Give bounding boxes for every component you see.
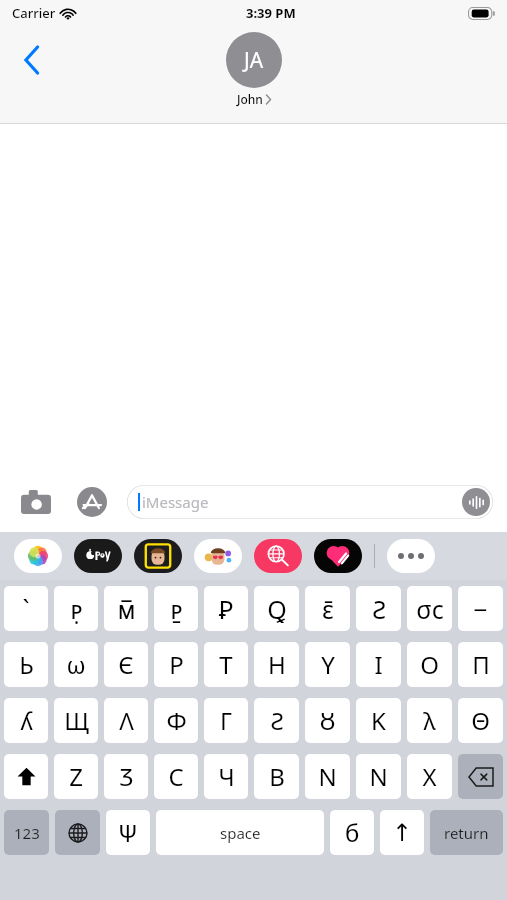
staticText: Θ xyxy=(471,704,490,737)
staticText: Ȣ xyxy=(319,704,336,737)
button[interactable]: б xyxy=(330,810,374,855)
button[interactable]: Щ xyxy=(54,698,98,743)
staticText: Ψ xyxy=(118,816,138,849)
staticText: Ι xyxy=(374,648,383,681)
button[interactable]: Φ xyxy=(154,698,198,743)
staticText: − xyxy=(473,592,488,626)
button[interactable]: Ν xyxy=(305,754,350,799)
button[interactable]: Z xyxy=(54,754,98,799)
button[interactable]: Switch keyboard xyxy=(55,810,100,855)
staticText: ↑ xyxy=(392,819,413,847)
button[interactable]: Κ xyxy=(356,698,401,743)
button[interactable]: Fitness xyxy=(314,539,362,573)
button[interactable]: Ꝑ xyxy=(204,586,248,631)
staticText: return xyxy=(444,823,489,843)
staticText: 3:39 PM xyxy=(246,4,296,22)
staticText: Β xyxy=(269,760,285,793)
staticText: ω xyxy=(66,648,86,681)
button[interactable]: Ꝗ xyxy=(254,586,299,631)
staticText: Ο xyxy=(420,648,439,681)
button[interactable]: Back xyxy=(10,38,54,82)
staticText: ᴘ̱ xyxy=(170,592,183,626)
staticText: Γ xyxy=(220,704,232,737)
staticText: Η xyxy=(268,648,286,681)
button[interactable]: iMessage xyxy=(127,485,493,519)
button[interactable]: Χ xyxy=(407,754,452,799)
button[interactable]: App Store xyxy=(74,484,110,520)
button[interactable]: Ƨ xyxy=(356,586,401,631)
staticText: C xyxy=(168,760,184,793)
button[interactable]: Υ xyxy=(305,642,350,687)
button[interactable]: Η xyxy=(254,642,299,687)
staticText: Ч xyxy=(218,760,235,793)
staticText: ` xyxy=(22,592,30,626)
staticText: Carrier xyxy=(12,4,56,22)
button[interactable]: Ȣ xyxy=(305,698,350,743)
button[interactable]: return xyxy=(430,810,503,855)
button[interactable]: ᴘ̣ xyxy=(54,586,98,631)
staticText: Ν xyxy=(318,760,337,793)
button[interactable]: ε̄ xyxy=(305,586,350,631)
staticText: Щ xyxy=(64,704,89,737)
button[interactable]: Ψ xyxy=(106,810,150,855)
button[interactable]: Λ xyxy=(104,698,148,743)
staticText: JA xyxy=(244,46,264,75)
staticText: space xyxy=(220,823,261,843)
button[interactable]: Ι xyxy=(356,642,401,687)
button[interactable]: JA xyxy=(226,32,282,107)
button[interactable]: ω xyxy=(54,642,98,687)
button[interactable]: Ч xyxy=(204,754,248,799)
button[interactable]: σc xyxy=(407,586,452,631)
staticText: Φ xyxy=(166,704,187,737)
button[interactable]: Photos xyxy=(14,539,62,573)
button[interactable]: Β xyxy=(254,754,299,799)
button[interactable]: Π xyxy=(458,642,503,687)
button[interactable]: 123 xyxy=(4,810,49,855)
staticText: Τ xyxy=(219,648,233,681)
staticText: John xyxy=(237,91,263,107)
button[interactable]: Ʒ xyxy=(104,754,148,799)
staticText: Ʒ xyxy=(119,760,134,793)
button[interactable]: Audio message xyxy=(462,488,490,516)
button[interactable]: Memoji xyxy=(194,539,242,573)
button[interactable]: − xyxy=(458,586,503,631)
button[interactable]: ʎ xyxy=(4,698,48,743)
button[interactable]: Ν xyxy=(356,754,401,799)
staticText: Ƨ xyxy=(270,704,284,737)
staticText: Ꝗ xyxy=(267,592,287,626)
staticText: Λ xyxy=(119,704,134,737)
button[interactable]: Ρ xyxy=(154,642,198,687)
button[interactable]: Apple Pay xyxy=(74,539,122,573)
button[interactable]: C xyxy=(154,754,198,799)
staticText: Є xyxy=(118,648,134,681)
button[interactable]: More apps xyxy=(387,539,435,573)
staticText: σc xyxy=(416,592,444,626)
staticText: Ρ xyxy=(169,648,184,681)
button[interactable]: Memoji stickers xyxy=(134,539,182,573)
button[interactable]: space xyxy=(156,810,324,855)
button[interactable]: Backspace xyxy=(458,754,503,799)
staticText: iMessage xyxy=(142,492,209,512)
button[interactable]: ᴍ̅ xyxy=(104,586,148,631)
button[interactable]: Ο xyxy=(407,642,452,687)
button[interactable]: Γ xyxy=(204,698,248,743)
button[interactable]: Ь xyxy=(4,642,48,687)
staticText: Π xyxy=(472,648,490,681)
staticText: Ꝑ xyxy=(218,592,234,626)
button[interactable]: Τ xyxy=(204,642,248,687)
staticText: Υ xyxy=(321,648,335,681)
button[interactable]: Θ xyxy=(458,698,503,743)
staticText: ᴘ̣ xyxy=(70,592,83,626)
button[interactable]: ᴘ̱ xyxy=(154,586,198,631)
staticText: Ƨ xyxy=(372,592,386,626)
button[interactable]: Camera xyxy=(18,484,54,520)
button[interactable]: Є xyxy=(104,642,148,687)
staticText: ε̄ xyxy=(322,592,334,626)
button[interactable]: ` xyxy=(4,586,48,631)
button[interactable]: λ xyxy=(407,698,452,743)
button[interactable]: ↑ xyxy=(380,810,424,855)
button[interactable]: Ƨ xyxy=(254,698,299,743)
button[interactable]: Images xyxy=(254,539,302,573)
staticText: 123 xyxy=(14,823,40,843)
button[interactable]: Shift xyxy=(4,754,48,799)
